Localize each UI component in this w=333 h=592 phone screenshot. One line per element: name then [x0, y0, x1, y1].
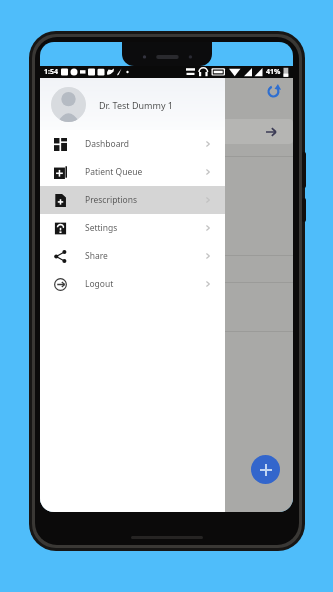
button[interactable]: Share — [40, 242, 225, 270]
button[interactable] — [40, 283, 293, 331]
button[interactable] — [40, 119, 293, 144]
button[interactable]: Patient Queue — [40, 158, 225, 186]
button[interactable]: Prescriptions — [40, 186, 225, 214]
button[interactable]: Add — [251, 455, 280, 484]
button[interactable]: Refresh — [267, 85, 280, 98]
button[interactable]: Settings — [40, 214, 225, 242]
staticText: Dashboard — [85, 138, 130, 150]
staticText: Dr. Test Dummy 1 — [99, 99, 173, 111]
button[interactable] — [40, 199, 293, 255]
staticText: Share — [85, 250, 108, 262]
button[interactable] — [40, 332, 293, 380]
staticText: Evening — [61, 173, 91, 184]
staticText: Logout — [85, 278, 114, 290]
button[interactable]: Dr. Test Dummy 1 — [40, 78, 225, 130]
staticText: Prescriptions — [85, 194, 138, 206]
button[interactable]: Dashboard — [40, 130, 225, 158]
button[interactable]: Logout — [40, 270, 225, 298]
staticText: Patient Queue — [85, 166, 143, 178]
staticText: 41% — [266, 67, 281, 77]
staticText: Cancelled — [41, 106, 73, 116]
staticText: 1:54 — [44, 67, 58, 77]
staticText: Settings — [85, 222, 118, 234]
